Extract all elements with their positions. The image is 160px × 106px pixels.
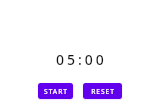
button[interactable]: START <box>38 83 73 99</box>
staticText: RESET <box>91 87 115 96</box>
button[interactable]: RESET <box>83 83 122 99</box>
staticText: START <box>44 87 68 96</box>
staticText: 05:00 <box>56 50 107 69</box>
